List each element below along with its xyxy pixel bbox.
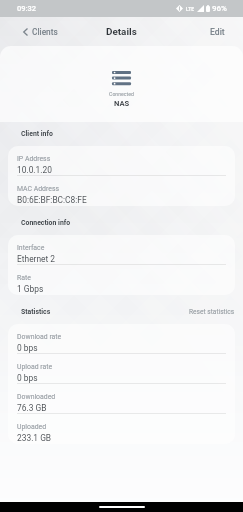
staticText: Downloaded bbox=[17, 393, 56, 401]
button[interactable]: Download rate bbox=[8, 324, 235, 354]
staticText: Clients bbox=[32, 27, 58, 37]
button[interactable]: IP Address bbox=[8, 146, 235, 176]
staticText: B0:6E:BF:BC:C8:FE bbox=[17, 195, 87, 205]
staticText: LTE bbox=[186, 6, 195, 12]
staticText: 0 bps bbox=[17, 343, 38, 353]
button[interactable]: Uploaded bbox=[8, 414, 235, 444]
button[interactable]: Reset statistics bbox=[189, 308, 235, 316]
staticText: 76.3 GB bbox=[17, 403, 47, 413]
staticText: 96% bbox=[212, 4, 227, 13]
staticText: MAC Address bbox=[17, 185, 60, 193]
staticText: Download rate bbox=[17, 333, 62, 341]
staticText: IP Address bbox=[17, 155, 51, 163]
button[interactable]: Upload rate bbox=[8, 354, 235, 384]
button[interactable]: Edit bbox=[210, 27, 225, 37]
staticText: Rate bbox=[17, 274, 31, 282]
staticText: 233.1 GB bbox=[17, 433, 52, 443]
staticText: Details bbox=[106, 26, 137, 38]
staticText: Connected bbox=[109, 91, 134, 97]
staticText: Uploaded bbox=[17, 423, 47, 431]
button[interactable]: Clients bbox=[23, 27, 58, 37]
staticText: Ethernet 2 bbox=[17, 254, 56, 264]
staticText: Interface bbox=[17, 244, 45, 252]
staticText: NAS bbox=[114, 99, 130, 108]
button[interactable]: Rate bbox=[8, 265, 235, 295]
staticText: 09:32 bbox=[17, 4, 37, 13]
staticText: 10.0.1.20 bbox=[17, 165, 52, 175]
button[interactable]: Interface bbox=[8, 235, 235, 265]
staticText: Connection info bbox=[21, 219, 71, 227]
button[interactable]: MAC Address bbox=[8, 176, 235, 206]
button[interactable]: Downloaded bbox=[8, 384, 235, 414]
staticText: Upload rate bbox=[17, 363, 53, 371]
staticText: Client info bbox=[21, 130, 53, 138]
staticText: Statistics bbox=[21, 308, 51, 316]
staticText: 1 Gbps bbox=[17, 284, 44, 294]
staticText: 0 bps bbox=[17, 373, 38, 383]
